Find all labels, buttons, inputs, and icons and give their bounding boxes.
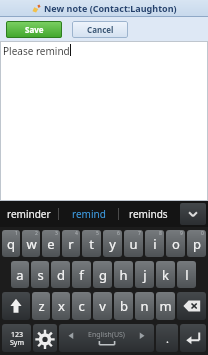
- staticText: l: [185, 266, 189, 284]
- staticText: v: [99, 297, 106, 315]
- staticText: b: [120, 297, 128, 315]
- button[interactable]: 2: [22, 230, 40, 257]
- button[interactable]: f: [72, 261, 91, 288]
- staticText: j: [143, 266, 147, 284]
- staticText: u: [129, 235, 138, 253]
- staticText: English(US): [88, 330, 125, 340]
- button[interactable]: 8: [145, 230, 164, 257]
- staticText: 2: [35, 230, 38, 237]
- staticText: m: [159, 297, 172, 315]
- button[interactable]: 4: [62, 230, 80, 257]
- button[interactable]: 5: [82, 230, 101, 257]
- staticText: t: [89, 235, 94, 253]
- staticText: z: [38, 297, 45, 315]
- button[interactable]: h: [114, 261, 133, 288]
- staticText: p: [193, 235, 201, 253]
- button[interactable]: reminds: [119, 201, 178, 227]
- button[interactable]: x: [52, 292, 70, 320]
- button[interactable]: d: [51, 261, 70, 288]
- staticText: f: [79, 266, 84, 284]
- button[interactable]: reminder: [0, 201, 58, 227]
- button[interactable]: n: [135, 292, 154, 320]
- button[interactable]: Please remind: [0, 41, 208, 201]
- staticText: r: [68, 235, 74, 253]
- button[interactable]: 123 Sym: [2, 324, 31, 352]
- staticText: reminds: [129, 207, 168, 221]
- staticText: 9: [180, 230, 183, 237]
- staticText: 0: [201, 230, 204, 237]
- staticText: h: [119, 266, 128, 284]
- button[interactable]: z: [32, 292, 50, 320]
- button[interactable]: Save: [6, 21, 62, 38]
- staticText: q: [7, 235, 15, 253]
- staticText: 8: [159, 230, 162, 237]
- button[interactable]: v: [93, 292, 112, 320]
- staticText: New note (Contact:Laughton): [44, 2, 177, 14]
- staticText: d: [57, 266, 65, 284]
- button[interactable]: 9: [166, 230, 185, 257]
- staticText: 4: [75, 230, 78, 237]
- button[interactable]: Cancel: [72, 21, 128, 38]
- button[interactable]: l: [177, 261, 196, 288]
- button[interactable]: 1: [2, 230, 20, 257]
- button[interactable]: 0: [187, 230, 206, 257]
- button[interactable]: Backspace: [177, 292, 206, 320]
- button[interactable]: s: [31, 261, 49, 288]
- staticText: 5: [96, 230, 99, 237]
- button[interactable]: 3: [42, 230, 60, 257]
- button[interactable]: g: [93, 261, 112, 288]
- staticText: n: [140, 297, 149, 315]
- button[interactable]: Settings: [33, 324, 57, 352]
- button[interactable]: remind: [59, 201, 118, 227]
- button[interactable]: 6: [103, 230, 122, 257]
- button[interactable]: Space, English (US): [59, 324, 154, 352]
- button[interactable]: j: [135, 261, 154, 288]
- staticText: Save: [25, 24, 44, 35]
- button[interactable]: a: [11, 261, 29, 288]
- staticText: i: [153, 235, 157, 253]
- staticText: Please remind: [3, 44, 70, 58]
- staticText: a: [16, 266, 24, 284]
- button[interactable]: m: [156, 292, 175, 320]
- staticText: y: [109, 235, 116, 253]
- button[interactable]: Shift: [2, 292, 30, 320]
- staticText: reminder: [7, 207, 51, 221]
- staticText: g: [99, 266, 107, 284]
- button[interactable]: .: [156, 324, 178, 352]
- staticText: s: [37, 266, 44, 284]
- staticText: 3: [55, 230, 58, 237]
- staticText: e: [47, 235, 55, 253]
- button[interactable]: c: [72, 292, 91, 320]
- button[interactable]: b: [114, 292, 133, 320]
- staticText: remind: [72, 207, 106, 221]
- button[interactable]: 7: [124, 230, 143, 257]
- staticText: o: [172, 235, 180, 253]
- staticText: 7: [138, 230, 141, 237]
- staticText: x: [58, 297, 65, 315]
- button[interactable]: Enter: [180, 324, 206, 352]
- staticText: .: [166, 331, 169, 346]
- staticText: 1: [15, 230, 18, 237]
- button[interactable]: k: [156, 261, 175, 288]
- staticText: Cancel: [87, 24, 114, 35]
- staticText: c: [78, 297, 85, 315]
- staticText: 123 Sym: [10, 330, 24, 347]
- button[interactable]: Expand suggestions: [180, 203, 206, 225]
- staticText: 6: [117, 230, 120, 237]
- staticText: k: [162, 266, 169, 284]
- staticText: w: [26, 235, 37, 253]
